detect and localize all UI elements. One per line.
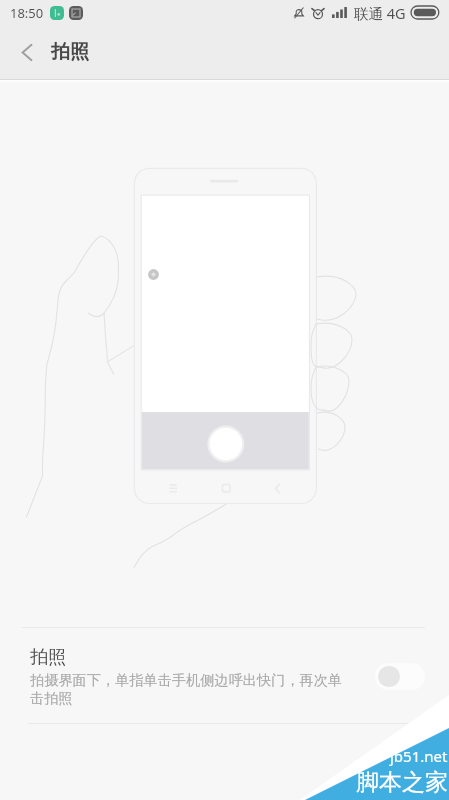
staticText: 联通 4G [354, 3, 406, 23]
button[interactable]: 拍照 [0, 628, 449, 723]
staticText: 拍照 [30, 646, 66, 669]
staticText: jb51.net [390, 746, 448, 766]
staticText: 18:50 [10, 4, 44, 22]
staticText: 拍照 [51, 40, 89, 64]
button[interactable]: Back [0, 25, 51, 79]
button[interactable]: Toggle [375, 663, 425, 690]
staticText: 脚本之家 [356, 768, 448, 797]
staticText: 拍摄界面下，单指单击手机侧边呼出快门，再次单击拍照 [30, 671, 355, 707]
